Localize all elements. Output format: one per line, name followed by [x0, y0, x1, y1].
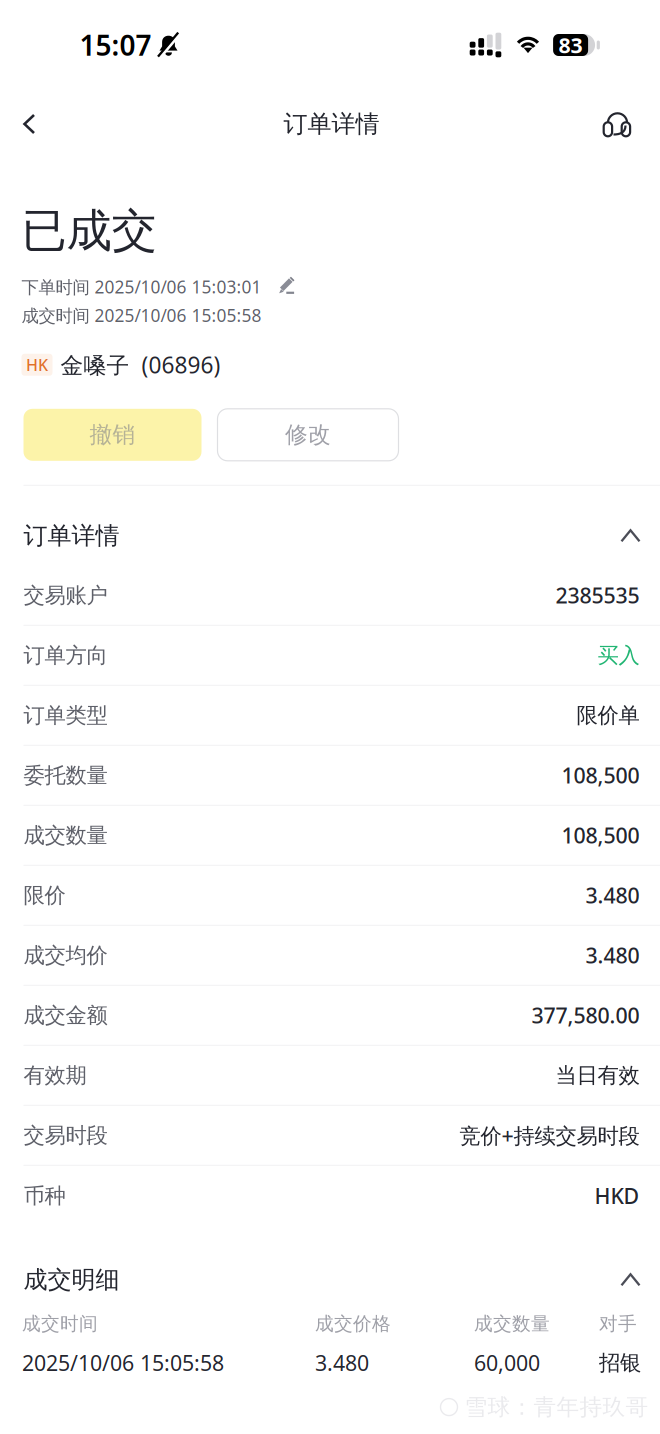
staticText: 招银: [599, 1350, 641, 1376]
staticText: 买入: [597, 642, 639, 668]
staticText: 60,000: [474, 1349, 540, 1377]
staticText: 撤销: [89, 421, 135, 449]
staticText: 3.480: [585, 881, 639, 909]
staticText: HK: [26, 354, 48, 375]
staticText: 成交数量: [23, 822, 107, 848]
staticText: 成交时间 2025/10/06 15:05:58: [21, 304, 261, 327]
staticText: 成交金额: [23, 1002, 107, 1028]
staticText: 成交价格: [315, 1312, 391, 1335]
staticText: 2385535: [555, 581, 639, 609]
staticText: 对手: [599, 1312, 637, 1335]
staticText: 交易账户: [23, 582, 107, 608]
staticText: 下单时间 2025/10/06 15:03:01: [21, 275, 261, 298]
staticText: 竞价+持续交易时段: [459, 1121, 639, 1149]
staticText: 成交明细: [23, 1265, 119, 1295]
staticText: 限价: [23, 882, 65, 908]
staticText: 币种: [23, 1183, 65, 1209]
button[interactable]: 客服: [594, 101, 640, 147]
button[interactable]: 订单详情: [1, 486, 660, 566]
staticText: 3.480: [315, 1349, 369, 1377]
staticText: 订单方向: [23, 642, 107, 668]
staticText: 订单详情: [283, 109, 379, 139]
button[interactable]: 修改: [217, 409, 398, 461]
staticText: 交易时段: [23, 1122, 107, 1148]
staticText: 金嗓子 (06896): [60, 350, 220, 380]
staticText: 成交均价: [23, 942, 107, 968]
staticText: 3.480: [585, 941, 639, 969]
staticText: 2025/10/06 15:05:58: [22, 1349, 224, 1377]
button[interactable]: 返回: [6, 101, 52, 147]
staticText: 修改: [285, 421, 331, 449]
staticText: 已成交: [21, 203, 156, 259]
staticText: 成交时间: [22, 1312, 98, 1335]
staticText: 108,500: [561, 821, 639, 849]
staticText: 15:07: [79, 26, 151, 64]
staticText: 377,580.00: [531, 1001, 639, 1029]
button[interactable]: 撤销: [23, 409, 201, 461]
staticText: 雪球：青年持玖哥: [464, 1393, 648, 1421]
staticText: 订单详情: [23, 521, 119, 551]
button[interactable]: 修改备注: [274, 275, 298, 299]
staticText: 83: [559, 31, 583, 59]
button[interactable]: 成交明细: [1, 1226, 660, 1309]
staticText: 订单类型: [23, 702, 107, 728]
staticText: 108,500: [561, 761, 639, 789]
staticText: 限价单: [576, 702, 639, 728]
staticText: HKD: [594, 1182, 639, 1210]
staticText: 有效期: [23, 1062, 86, 1088]
staticText: 委托数量: [23, 762, 107, 788]
staticText: 当日有效: [555, 1062, 639, 1088]
staticText: 成交数量: [474, 1312, 550, 1335]
